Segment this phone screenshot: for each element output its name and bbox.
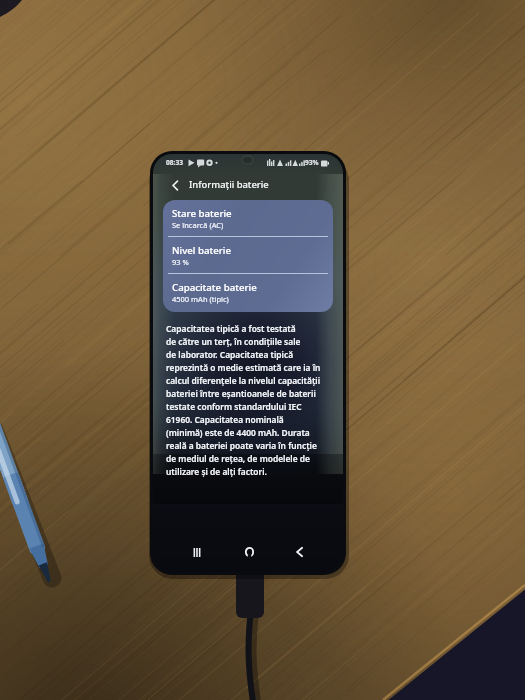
button[interactable]: Recent apps xyxy=(186,541,208,563)
button[interactable]: Capacitate baterie xyxy=(163,274,333,311)
staticText: Se încarcă (AC) xyxy=(172,220,224,230)
button[interactable]: Back xyxy=(167,177,183,193)
staticText: Stare baterie xyxy=(172,207,232,220)
staticText: 4500 mAh (tipic) xyxy=(172,294,229,304)
staticText: 93% xyxy=(305,158,319,167)
button[interactable]: Back xyxy=(288,541,310,563)
staticText: Capacitate baterie xyxy=(172,281,257,294)
staticText: 93 % xyxy=(172,257,189,267)
staticText: 08:33 xyxy=(166,158,183,167)
button[interactable]: Home xyxy=(238,541,260,563)
button[interactable]: Nivel baterie xyxy=(163,237,333,274)
staticText: Capacitatea tipică a fost testată de căt… xyxy=(166,323,321,478)
staticText: Informații baterie xyxy=(189,178,269,191)
staticText: Nivel baterie xyxy=(172,244,232,257)
button[interactable]: Stare baterie xyxy=(163,200,333,237)
